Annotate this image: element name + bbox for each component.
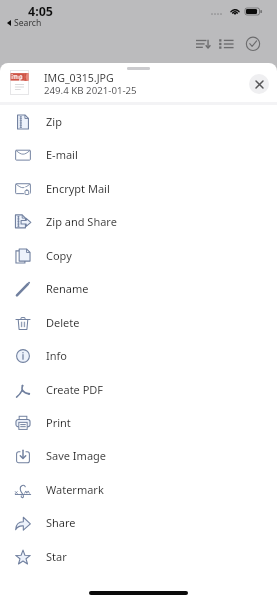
staticText: Search [14,17,42,29]
staticText: Share [46,515,76,530]
staticText: Create PDF [46,382,104,397]
staticText: Save Image [46,448,107,463]
button[interactable]: Watermark [0,473,277,506]
staticText: Copy [46,248,72,263]
staticText: IMG_0315.JPG [44,71,114,85]
button[interactable]: Create PDF [0,373,277,406]
button[interactable]: View as list [217,35,235,53]
staticText: 249.4 KB 2021-01-25 [44,84,137,97]
staticText: Print [46,415,71,430]
staticText: Star [46,549,67,564]
button[interactable]: Select [244,35,262,53]
staticText: E-mail [46,147,78,162]
staticText: Delete [46,315,80,330]
staticText: Rename [46,281,89,296]
staticText: Zip [46,114,62,129]
button[interactable]: Print [0,406,277,439]
staticText: Zip and Share [46,214,117,229]
staticText: 4:05 [28,3,53,20]
button[interactable]: Zip [0,105,277,138]
staticText: Watermark [46,482,104,497]
button[interactable]: Delete [0,306,277,339]
button[interactable]: Rename [0,272,277,305]
button[interactable]: Copy [0,239,277,272]
staticText: Info [46,348,67,363]
button[interactable]: Close [249,74,269,94]
button[interactable]: Share [0,506,277,539]
button[interactable]: Save Image [0,439,277,472]
button[interactable]: Star [0,540,277,573]
button[interactable]: E-mail [0,138,277,171]
button[interactable]: Sort [194,35,212,53]
button[interactable]: Encrypt Mail [0,172,277,205]
button[interactable]: Zip and Share [0,205,277,238]
staticText: Encrypt Mail [46,181,110,196]
button[interactable]: Info [0,339,277,372]
